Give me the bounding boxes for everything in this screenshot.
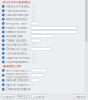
staticText: Запоминать путь <box>6 13 28 17</box>
staticText: Справка <box>32 95 43 98</box>
staticText: Звуковые сигналы <box>6 56 30 59</box>
staticText: Параметры сети <box>1 64 21 68</box>
button[interactable]: Разворачивать окно <box>0 8 88 13</box>
button[interactable]: Журнал соединений <box>0 82 88 87</box>
staticText: Закрыть <box>75 95 85 98</box>
button[interactable]: Импорт <box>16 95 30 98</box>
button[interactable]: Каталог копий <box>0 30 88 34</box>
staticText: Импорт <box>17 95 28 98</box>
staticText: Использовать прокси <box>6 69 30 72</box>
button[interactable]: Отчёты об ошибках <box>0 47 88 51</box>
button[interactable]: Закрыть <box>73 95 86 98</box>
button[interactable]: Панель инструментов <box>0 4 88 9</box>
button[interactable]: Адрес сервера и порт подключения к сети <box>0 73 88 78</box>
button[interactable]: Запоминать путь <box>0 13 88 17</box>
button[interactable]: Использовать прокси <box>0 68 88 73</box>
button[interactable]: Подтверждать выход <box>0 60 88 64</box>
staticText: Тайм-аут ожидания <box>6 78 30 82</box>
staticText: Журнал соединений <box>6 83 30 86</box>
staticText: Открыть <box>3 95 13 98</box>
staticText: Адрес сервера и порт подключения к сети <box>6 72 30 79</box>
button[interactable]: Тайм-аут ожидания <box>0 78 88 82</box>
staticText: Проверять обновления <box>6 43 30 47</box>
staticText: Размер шрифта <box>6 39 26 42</box>
button[interactable]: Формат даты <box>0 34 88 38</box>
button[interactable]: Каталог временных <box>0 26 88 30</box>
staticText: Подтверждать выход <box>6 60 30 64</box>
button[interactable]: Справка <box>31 95 45 98</box>
button[interactable]: Интервал, мин <box>0 21 88 26</box>
staticText: Каталог копий <box>6 30 26 34</box>
button[interactable]: Автосохранение <box>0 17 88 21</box>
button[interactable]: Звуковые сигналы <box>0 55 88 60</box>
staticText: Панель инструментов <box>6 5 30 8</box>
staticText: Автосохранение <box>6 17 27 21</box>
staticText: Формат даты <box>6 34 23 38</box>
staticText: Отчёты об ошибках <box>6 47 30 51</box>
staticText: Статистика трафика <box>6 87 30 91</box>
button[interactable]: Статистика трафика <box>0 87 88 91</box>
staticText: Основные параметры <box>1 0 30 4</box>
button[interactable]: Открыть <box>2 95 15 98</box>
staticText: Разворачивать окно <box>6 9 30 12</box>
staticText: Сворачивать в трей <box>6 52 30 55</box>
button[interactable]: Размер шрифта <box>0 38 88 43</box>
staticText: Интервал, мин <box>6 22 27 25</box>
staticText: Каталог временных <box>6 26 30 29</box>
button[interactable]: Сворачивать в трей <box>0 51 88 55</box>
button[interactable]: Проверять обновления <box>0 43 88 47</box>
